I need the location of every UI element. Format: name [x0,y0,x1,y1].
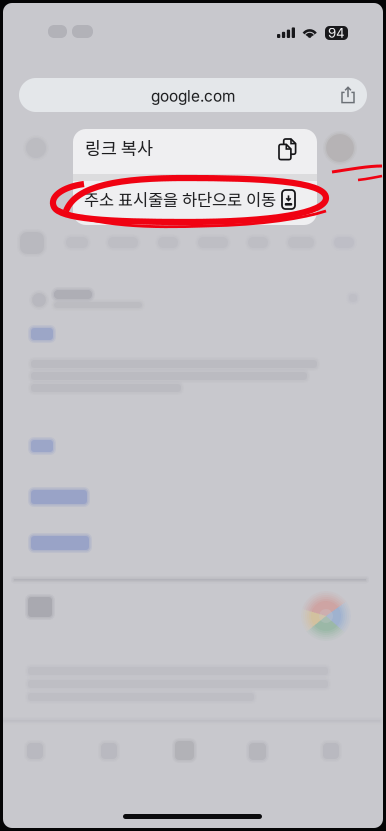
staticText: 94 [328,25,345,41]
staticText: 주소 표시줄을 하단으로 이동 [84,187,276,211]
staticText: google.com [151,87,235,106]
button[interactable]: 링크 복사 [73,129,317,174]
button[interactable]: 주소 표시줄을 하단으로 이동 [73,181,317,225]
button[interactable]: google.com [19,78,367,112]
staticText: 링크 복사 [85,135,153,160]
